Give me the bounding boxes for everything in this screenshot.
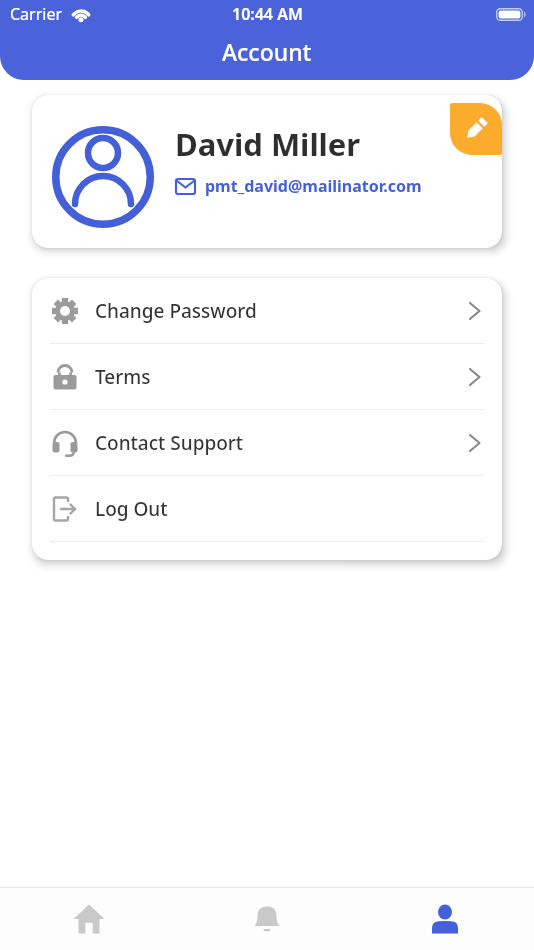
button[interactable] bbox=[178, 888, 356, 950]
button[interactable] bbox=[450, 103, 502, 155]
staticText: David Miller bbox=[175, 123, 361, 165]
button[interactable] bbox=[0, 888, 178, 950]
staticText: Carrier bbox=[10, 3, 63, 25]
staticText: Log Out bbox=[95, 496, 168, 522]
staticText: Contact Support bbox=[95, 430, 244, 456]
button[interactable] bbox=[356, 888, 534, 950]
button[interactable]: Contact Support bbox=[32, 410, 502, 475]
staticText: Account bbox=[222, 36, 312, 67]
button[interactable]: Terms bbox=[32, 344, 502, 409]
button[interactable]: Change Password bbox=[32, 278, 502, 343]
staticText: 10:44 AM bbox=[232, 3, 303, 25]
button[interactable]: Log Out bbox=[32, 476, 502, 541]
staticText: pmt_david@mailinator.com bbox=[205, 175, 422, 197]
staticText: Change Password bbox=[95, 298, 257, 324]
staticText: Terms bbox=[95, 364, 151, 390]
